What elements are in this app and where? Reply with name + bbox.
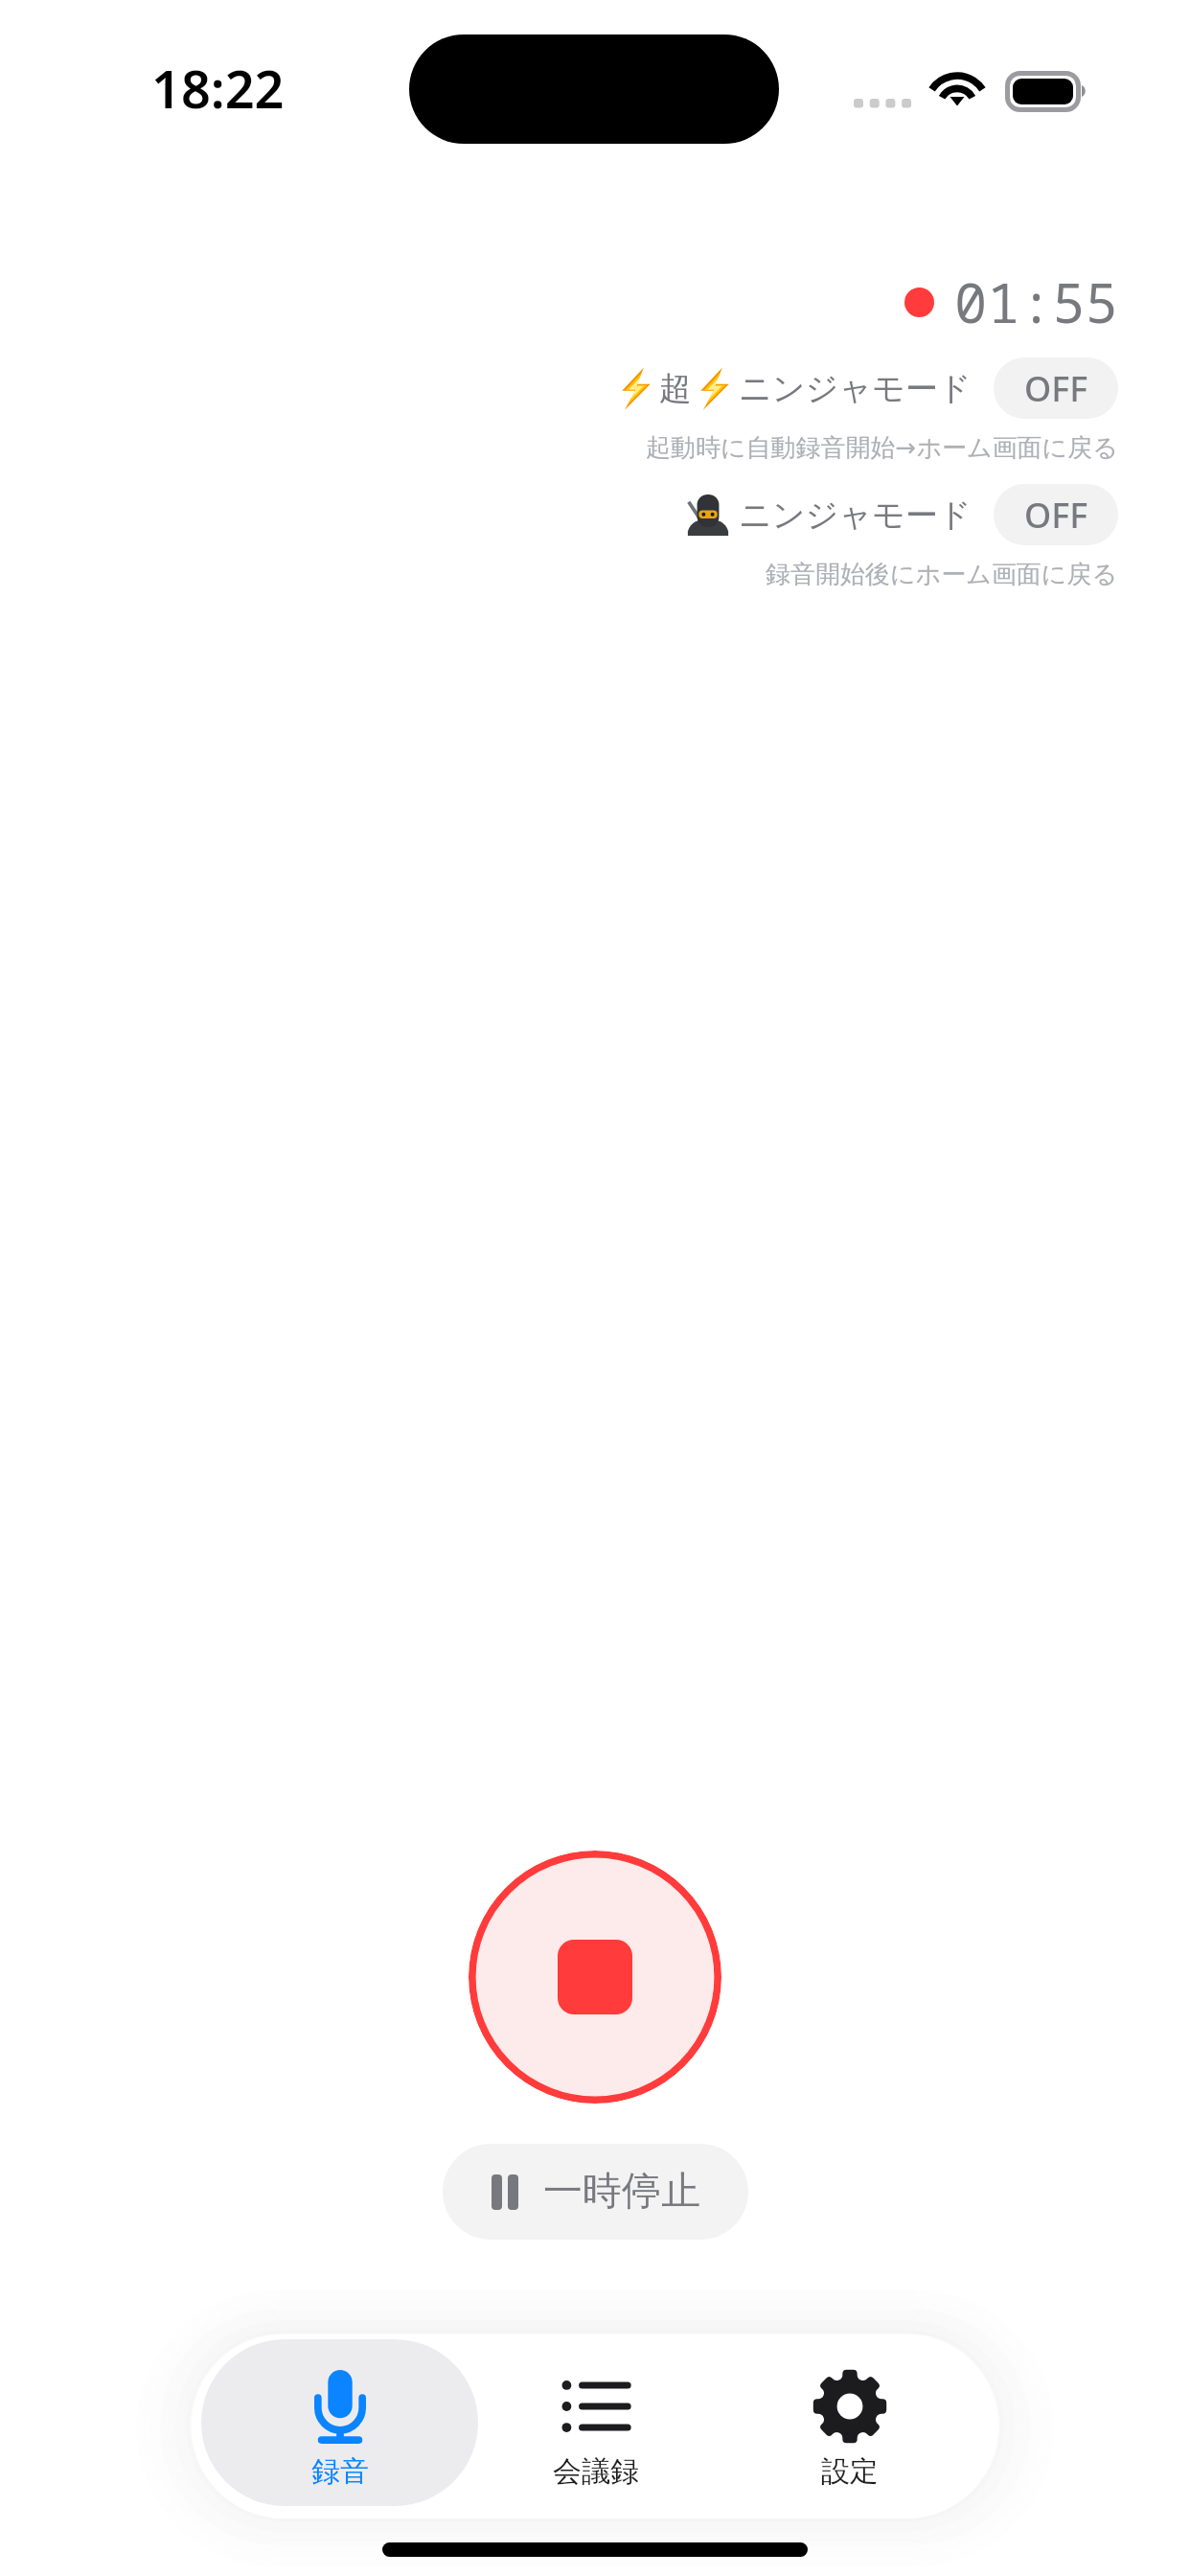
staticText: 録音開始後にホーム画面に戻る — [766, 559, 1118, 590]
staticText: 一時停止 — [543, 2167, 700, 2217]
staticText: 超 — [659, 368, 692, 409]
button[interactable]: OFF — [994, 484, 1118, 545]
staticText: ニンジャモード — [739, 494, 972, 536]
staticText: OFF — [1024, 492, 1088, 539]
staticText: 01:55 — [954, 264, 1118, 339]
staticText: OFF — [1024, 365, 1088, 412]
button[interactable]: OFF — [994, 357, 1118, 419]
button[interactable]: 一時停止 — [443, 2144, 748, 2240]
button[interactable]: 設定 — [711, 2343, 988, 2516]
staticText: 録音 — [311, 2453, 369, 2490]
staticText: 起動時に自動録音開始→ホーム画面に戻る — [646, 432, 1118, 464]
staticText: ニンジャモード — [739, 368, 972, 409]
button[interactable]: 録音 — [201, 2343, 478, 2516]
staticText: 18:22 — [151, 53, 285, 124]
staticText: 設定 — [821, 2453, 879, 2490]
staticText: 会議録 — [553, 2453, 639, 2490]
button[interactable]: Stop recording — [469, 1851, 721, 2104]
button[interactable]: 会議録 — [457, 2343, 734, 2516]
